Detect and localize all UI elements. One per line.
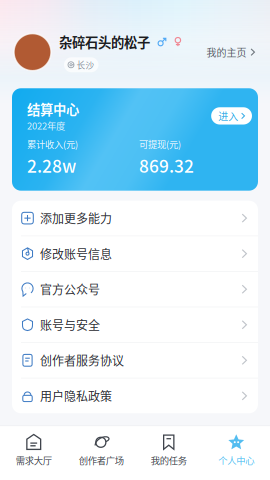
staticText: 用户隐私政策: [40, 387, 112, 405]
button[interactable]: 添加更多能力: [12, 201, 258, 236]
button[interactable]: 创作者广场: [67, 425, 135, 475]
staticText: 869.32: [139, 153, 194, 178]
staticText: 可提现(元): [139, 137, 181, 151]
staticText: 2.28w: [27, 153, 76, 178]
staticText: 官方公众号: [40, 280, 100, 298]
button[interactable]: 个人中心: [202, 425, 270, 475]
button[interactable]: 修改账号信息: [12, 236, 258, 271]
button[interactable]: 我的主页: [206, 39, 255, 65]
staticText: 结算中心: [27, 99, 79, 119]
staticText: 2022年度: [27, 119, 65, 132]
staticText: 账号与安全: [40, 316, 100, 333]
button[interactable]: 用户隐私政策: [12, 378, 258, 413]
button[interactable]: 创作者服务协议: [12, 343, 258, 378]
staticText: 创作者广场: [79, 453, 124, 467]
button[interactable]: 我的任务: [135, 425, 202, 475]
button[interactable]: 结算中心: [12, 88, 258, 191]
staticText: 修改账号信息: [40, 245, 112, 262]
staticText: 个人中心: [218, 453, 254, 467]
button[interactable]: 官方公众号: [12, 272, 258, 307]
button[interactable]: 账号与安全: [12, 307, 258, 342]
staticText: 杂碎石头的松子: [59, 32, 150, 51]
staticText: 创作者服务协议: [40, 352, 124, 369]
staticText: 需求大厅: [16, 453, 52, 467]
button[interactable]: 需求大厅: [0, 425, 67, 475]
staticText: 我的任务: [151, 453, 187, 467]
staticText: 累计收入(元): [27, 137, 78, 151]
staticText: 进入: [218, 109, 238, 123]
staticText: 长沙: [76, 58, 94, 71]
staticText: 添加更多能力: [40, 209, 112, 227]
staticText: 我的主页: [206, 45, 246, 59]
